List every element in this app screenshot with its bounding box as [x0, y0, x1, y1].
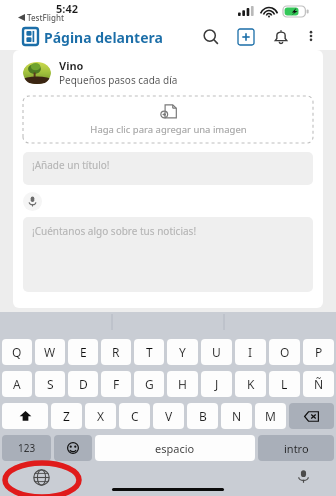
staticText: N	[232, 408, 242, 424]
staticText: E	[80, 344, 87, 360]
button[interactable]: J	[201, 371, 232, 397]
button[interactable]: C	[119, 403, 150, 429]
staticText: C	[131, 408, 139, 424]
staticText: I	[248, 344, 253, 360]
button[interactable]: Search	[202, 28, 220, 46]
button[interactable]: L	[269, 371, 300, 397]
button[interactable]: B	[187, 403, 218, 429]
button[interactable]: V	[153, 403, 184, 429]
button[interactable]: U	[201, 339, 232, 365]
staticText: B	[199, 408, 207, 424]
button[interactable]: E	[68, 339, 98, 365]
button[interactable]: espacio	[95, 435, 255, 461]
button[interactable]: X	[85, 403, 116, 429]
button[interactable]: ¡Cuéntanos algo sobre tus noticias!	[23, 217, 313, 292]
staticText: T	[146, 344, 153, 360]
button[interactable]: Notifications	[272, 28, 290, 46]
staticText: U	[212, 344, 221, 360]
staticText: W	[44, 344, 56, 360]
button[interactable]: D	[68, 371, 98, 397]
staticText: R	[112, 344, 120, 360]
button[interactable]: T	[134, 339, 164, 365]
staticText: 123	[18, 441, 36, 455]
button[interactable]: N	[221, 403, 252, 429]
staticText: Pequeños pasos cada día	[59, 73, 178, 87]
staticText: K	[247, 376, 255, 392]
button[interactable]: Dictar	[23, 192, 42, 211]
staticText: espacio	[155, 441, 195, 456]
staticText: Ñ	[314, 376, 324, 392]
button[interactable]: 123	[2, 435, 51, 461]
button[interactable]: F	[101, 371, 131, 397]
staticText: V	[165, 408, 173, 424]
staticText: S	[47, 376, 54, 392]
button[interactable]: M	[255, 403, 286, 429]
staticText: ¡Cuéntanos algo sobre tus noticias!	[32, 224, 197, 238]
staticText: O	[280, 344, 290, 360]
button[interactable]: Dictado	[296, 469, 311, 484]
staticText: Vino	[59, 58, 84, 73]
staticText: X	[97, 408, 105, 424]
staticText: Haga clic para agregar una imagen	[90, 123, 247, 136]
button[interactable]: Backspace	[289, 403, 334, 429]
button[interactable]: ¡Añade un título!	[23, 152, 313, 185]
button[interactable]: Cambiar teclado	[33, 469, 50, 486]
button[interactable]: A	[2, 371, 32, 397]
button[interactable]: H	[167, 371, 198, 397]
button[interactable]: Logo	[22, 28, 39, 45]
button[interactable]: Ñ	[303, 371, 334, 397]
button[interactable]: Agregar una imagen	[23, 96, 313, 143]
staticText: Q	[12, 344, 22, 360]
staticText: P	[315, 344, 323, 360]
button[interactable]: R	[101, 339, 131, 365]
button[interactable]: P	[303, 339, 334, 365]
staticText: Z	[63, 408, 70, 424]
staticText: intro	[284, 441, 309, 456]
button[interactable]: Vino	[23, 58, 313, 87]
staticText: A	[13, 376, 21, 392]
staticText: G	[145, 376, 154, 392]
button[interactable]: W	[35, 339, 65, 365]
button[interactable]: Página delantera	[44, 28, 163, 47]
button[interactable]: S	[35, 371, 65, 397]
button[interactable]: intro	[258, 435, 334, 461]
button[interactable]: Emoji	[54, 435, 92, 461]
button[interactable]: O	[269, 339, 300, 365]
staticText: TestFlight	[27, 12, 65, 23]
staticText: M	[265, 408, 276, 424]
button[interactable]: Q	[2, 339, 32, 365]
button[interactable]: I	[235, 339, 266, 365]
staticText: D	[79, 376, 88, 392]
button[interactable]: Z	[51, 403, 82, 429]
button[interactable]: More options	[303, 28, 319, 44]
staticText: ¡Añade un título!	[32, 158, 110, 172]
button[interactable]: K	[235, 371, 266, 397]
button[interactable]: Shift	[2, 403, 48, 429]
staticText: F	[113, 376, 120, 392]
button[interactable]: Y	[167, 339, 198, 365]
staticText: 5:42	[56, 1, 78, 16]
staticText: J	[215, 376, 219, 392]
button[interactable]: G	[134, 371, 164, 397]
staticText: L	[281, 376, 288, 392]
button[interactable]: Add	[238, 29, 254, 45]
staticText: H	[178, 376, 187, 392]
staticText: Y	[179, 344, 186, 360]
